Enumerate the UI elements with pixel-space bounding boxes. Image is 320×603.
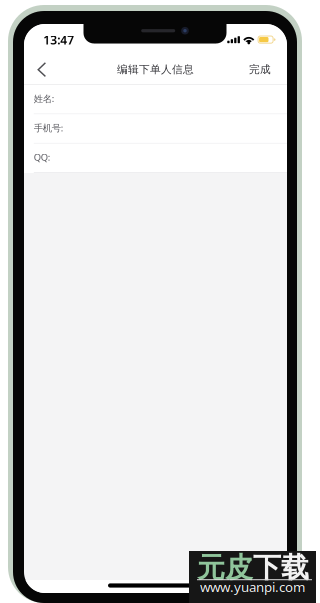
staticText: 编辑下单人信息 — [117, 63, 194, 76]
staticText: 手机号: — [34, 122, 64, 134]
staticText: 元皮 — [197, 550, 253, 585]
button[interactable]: 手机号: — [24, 114, 287, 144]
button[interactable]: 姓名: — [24, 85, 287, 114]
button[interactable]: Back — [24, 54, 60, 84]
staticText: 姓名: — [34, 92, 55, 105]
staticText: www.yuanpi.com — [200, 578, 305, 596]
staticText: 13:47 — [43, 32, 74, 48]
staticText: 下载 — [253, 550, 309, 585]
button[interactable]: QQ: — [24, 144, 287, 173]
staticText: QQ: — [34, 151, 51, 163]
staticText: 完成 — [249, 63, 271, 76]
button[interactable]: 完成 — [239, 54, 281, 84]
